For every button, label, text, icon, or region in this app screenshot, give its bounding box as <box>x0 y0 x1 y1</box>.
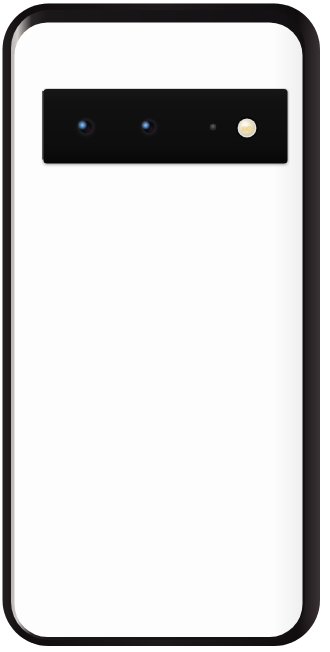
button[interactable]: Pixel phone back view <box>0 0 330 652</box>
